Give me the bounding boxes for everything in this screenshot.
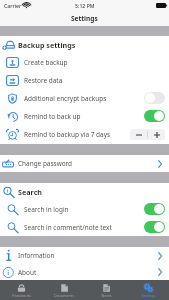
staticText: Remind to back up	[24, 112, 81, 121]
other: Wi-Fi	[23, 2, 30, 8]
staticText: Documents	[54, 293, 74, 298]
button[interactable]: Remind to back up	[0, 107, 169, 125]
staticText: Remind to backup via 7 days	[24, 130, 111, 139]
button[interactable]: Passwords	[0, 280, 43, 300]
staticText: Carrier	[4, 2, 22, 9]
staticText: Create backup	[24, 58, 68, 67]
staticText: Search in comment/note text	[24, 223, 112, 232]
staticText: Backup settings	[18, 40, 76, 50]
button[interactable]: Change password	[0, 155, 169, 172]
button[interactable]: On	[144, 221, 165, 233]
button[interactable]: Off	[144, 92, 165, 104]
button[interactable]: About	[0, 264, 169, 280]
button[interactable]: Create backup	[0, 53, 169, 71]
button[interactable]: Notes	[85, 280, 127, 300]
button[interactable]: Remind to backup via 7 days	[0, 125, 169, 144]
staticText: About	[18, 268, 37, 277]
staticText: Search in login	[24, 205, 69, 214]
staticText: Restore data	[24, 76, 63, 85]
button[interactable]: Decrease	[130, 129, 147, 140]
button[interactable]: Search in login	[0, 200, 169, 218]
button[interactable]: Increase	[148, 129, 165, 140]
button[interactable]: Search in comment/note text	[0, 218, 169, 236]
button[interactable]: Restore data	[0, 71, 169, 89]
staticText: Change password	[18, 159, 73, 168]
other: Open	[158, 252, 162, 260]
staticText: Search	[18, 187, 43, 197]
button[interactable]: Settings	[127, 280, 169, 300]
staticText: Additional encrypt backups	[24, 94, 107, 103]
button[interactable]: Search	[0, 183, 169, 200]
staticText: Notes	[101, 293, 112, 298]
other: Open	[158, 268, 162, 276]
other: Open	[158, 160, 162, 168]
button[interactable]: On	[144, 110, 165, 122]
button[interactable]: On	[144, 203, 165, 215]
staticText: 5:12 PM	[75, 2, 95, 9]
button[interactable]: Additional encrypt backups	[0, 89, 169, 107]
button[interactable]: Information	[0, 247, 169, 264]
staticText: Passwords	[12, 293, 31, 298]
button[interactable]: Backup settings	[0, 36, 169, 53]
staticText: Settings	[141, 293, 156, 298]
staticText: Settings	[71, 14, 98, 23]
staticText: Information	[18, 251, 55, 260]
button[interactable]: Documents	[43, 280, 85, 300]
